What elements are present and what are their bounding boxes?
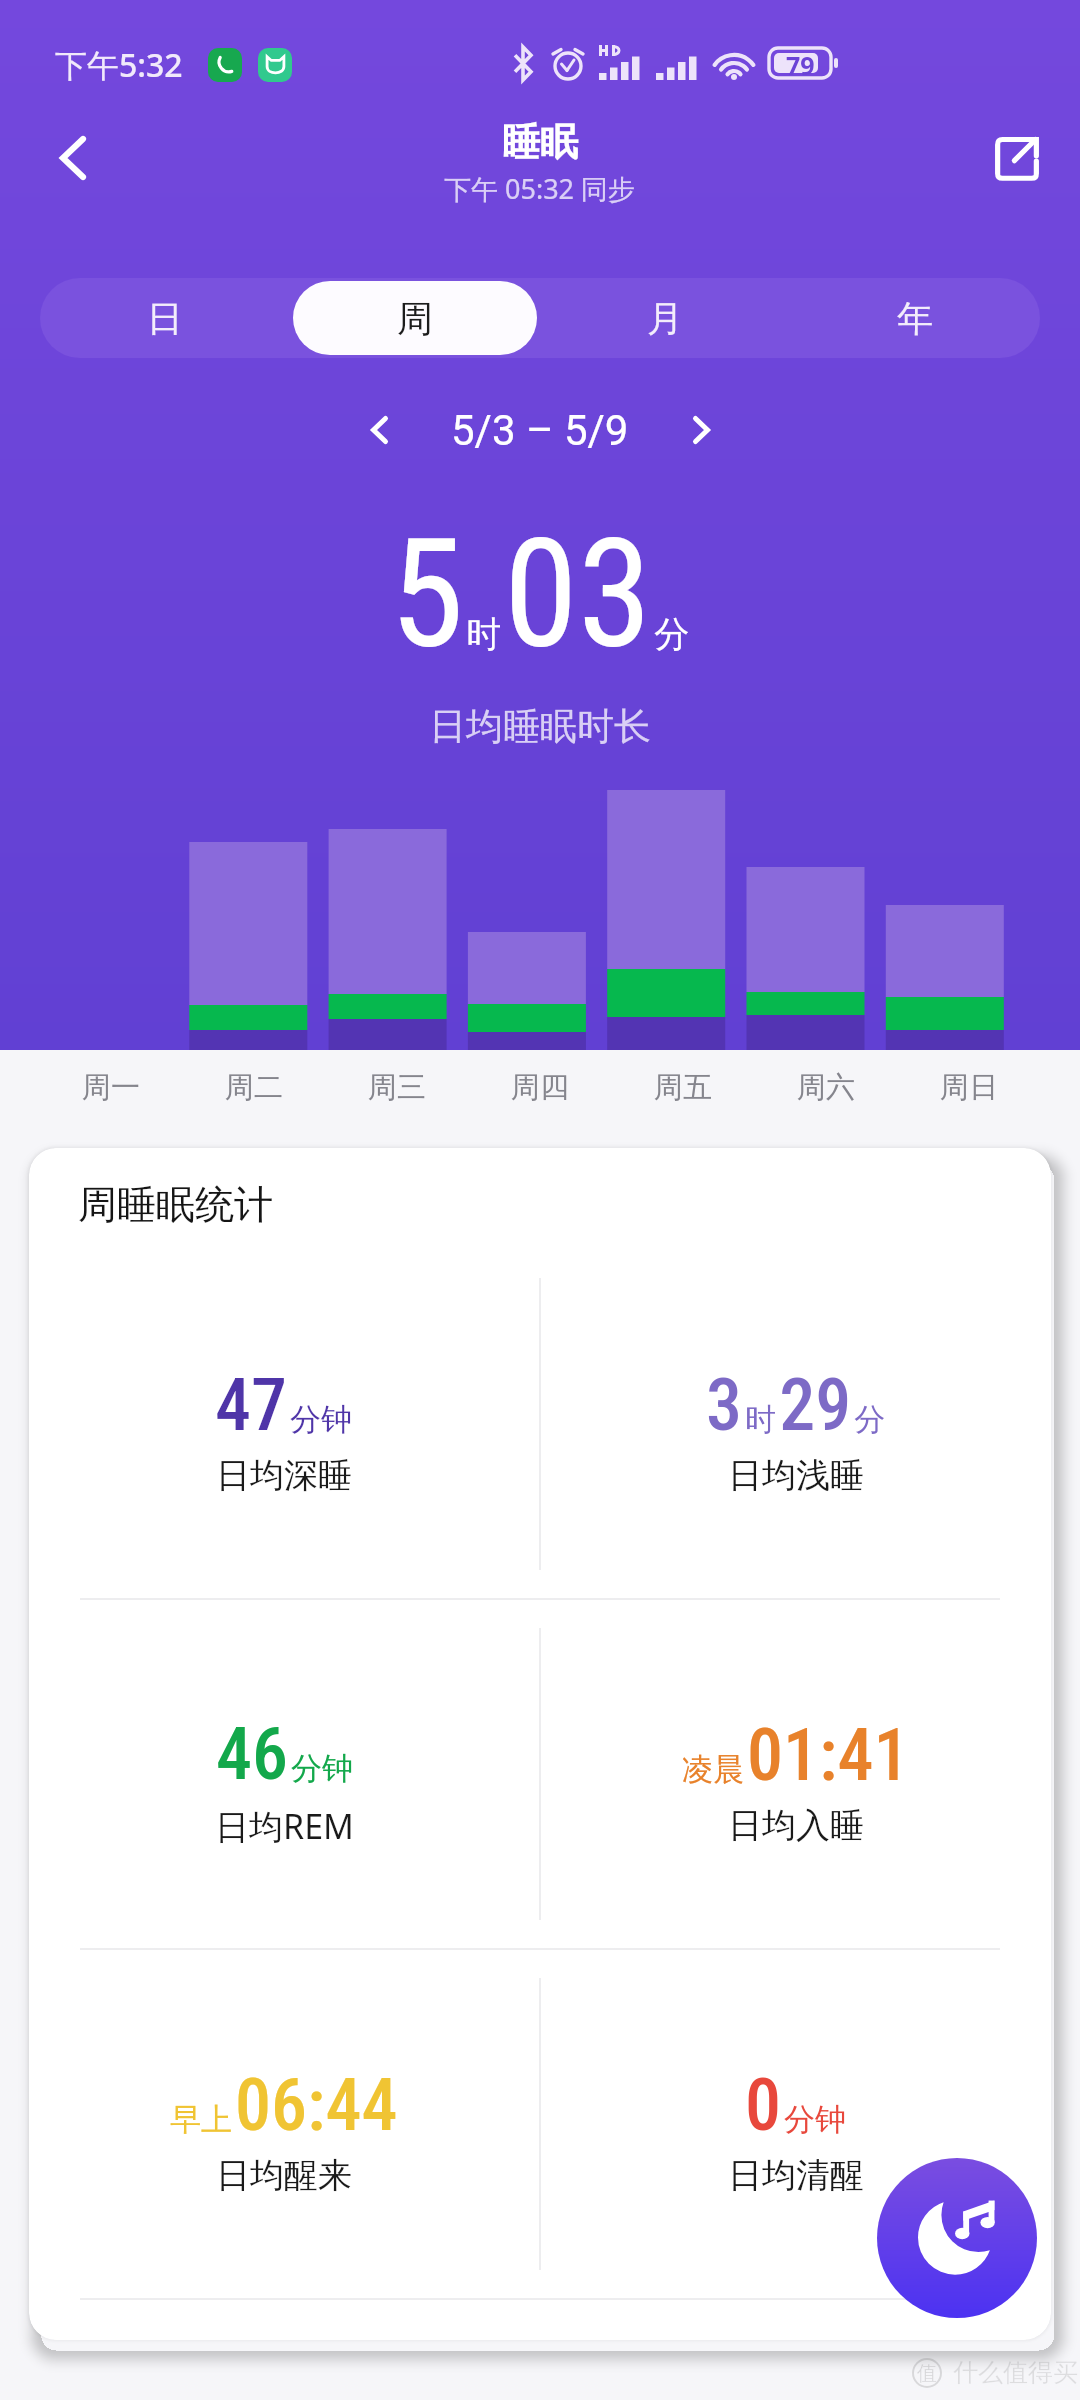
- staticText: 46 分钟: [216, 1712, 354, 1796]
- staticText: 睡眠: [502, 118, 578, 166]
- button[interactable]: 年: [793, 281, 1037, 355]
- staticText: 日均醒来: [216, 2154, 352, 2197]
- staticText: 日均浅睡: [728, 1454, 864, 1497]
- staticText: 周五: [654, 1069, 712, 1106]
- staticText: 0 分钟: [745, 2063, 847, 2147]
- staticText: 值: [917, 2361, 937, 2386]
- button[interactable]: 月: [543, 281, 787, 355]
- button[interactable]: Previous week: [339, 390, 419, 470]
- staticText: 周二: [225, 1069, 283, 1106]
- staticText: 日均睡眠时长: [0, 703, 1080, 750]
- staticText: 日: [147, 296, 183, 341]
- button[interactable]: 周: [293, 281, 537, 355]
- staticText: 下午 05:32 同步: [444, 170, 636, 207]
- staticText: 日均深睡: [216, 1454, 352, 1497]
- staticText: 早上 06:44: [170, 2063, 398, 2147]
- staticText: 周四: [511, 1069, 569, 1106]
- staticText: 月: [647, 296, 683, 341]
- staticText: 凌晨 01:41: [682, 1713, 910, 1797]
- staticText: 日均入睡: [728, 1804, 864, 1847]
- staticText: 周睡眠统计: [78, 1180, 273, 1229]
- button[interactable]: Next week: [661, 390, 741, 470]
- staticText: 47 分钟: [215, 1363, 353, 1447]
- button[interactable]: Back: [13, 108, 133, 208]
- staticText: 下午5:32: [55, 43, 183, 87]
- staticText: 周日: [940, 1069, 998, 1106]
- staticText: 周三: [368, 1069, 426, 1106]
- staticText: 79: [786, 48, 815, 78]
- staticText: 年: [897, 296, 933, 341]
- staticText: 5/3 – 5/9: [451, 406, 629, 455]
- staticText: 3 时 29 分: [706, 1363, 886, 1447]
- staticText: 周: [397, 296, 433, 341]
- staticText: 5 时 03 分: [390, 507, 690, 683]
- staticText: 日均REM: [215, 1803, 354, 1849]
- button[interactable]: Sleep music: [877, 2158, 1037, 2318]
- button[interactable]: 日: [43, 281, 287, 355]
- staticText: 日均清醒: [728, 2154, 864, 2197]
- staticText: 什么值得买: [953, 2357, 1078, 2388]
- staticText: 周六: [797, 1069, 855, 1106]
- button[interactable]: Share: [962, 108, 1072, 208]
- staticText: 周一: [82, 1069, 140, 1106]
